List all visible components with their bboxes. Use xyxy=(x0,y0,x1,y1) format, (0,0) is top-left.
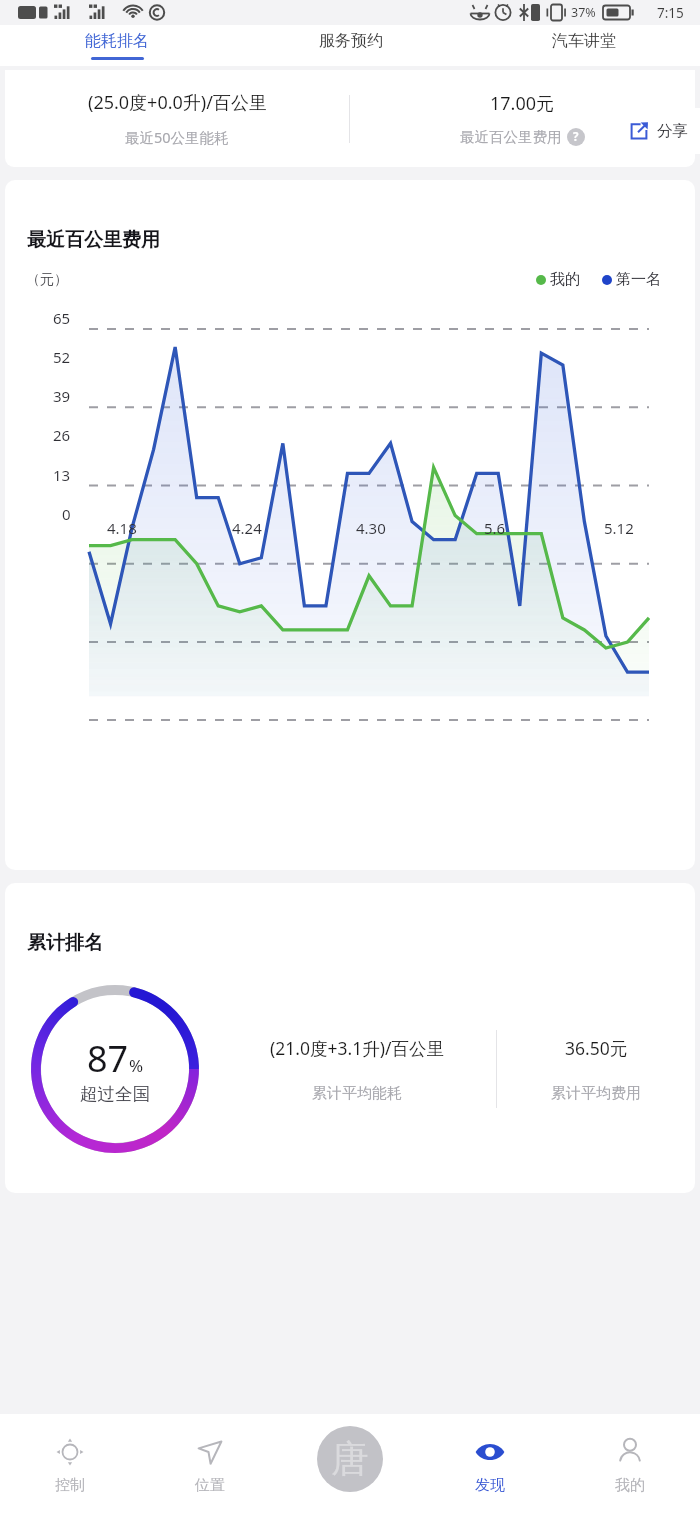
staticText: 位置 xyxy=(195,1476,225,1495)
staticText: 52 xyxy=(53,347,71,367)
button[interactable]: 汽车讲堂 xyxy=(467,25,700,66)
button[interactable]: 位置 xyxy=(140,1414,280,1516)
staticText: 65 xyxy=(53,308,71,328)
staticText: 累计平均能耗 xyxy=(312,1084,402,1103)
staticText: 13 xyxy=(53,465,71,485)
staticText: 87 xyxy=(87,1034,129,1083)
button[interactable]: 我的 xyxy=(560,1414,700,1516)
staticText: 累计平均费用 xyxy=(551,1084,641,1103)
staticText: 唐 xyxy=(331,1435,369,1483)
staticText: 最近百公里费用 xyxy=(460,128,562,146)
staticText: （元） xyxy=(26,271,68,289)
staticText: % xyxy=(129,1054,144,1077)
staticText: 4.24 xyxy=(232,518,262,538)
staticText: 汽车讲堂 xyxy=(552,31,616,51)
staticText: 5.12 xyxy=(604,518,634,538)
staticText: 5.6 xyxy=(484,518,506,538)
staticText: 39 xyxy=(53,386,71,406)
staticText: (25.0度+0.0升)/百公里 xyxy=(88,90,267,115)
staticText: 能耗排名 xyxy=(85,31,149,51)
staticText: 最近百公里费用 xyxy=(27,228,160,252)
staticText: 分享 xyxy=(657,121,688,141)
staticText: 37% xyxy=(571,4,596,21)
button[interactable]: 帮助 xyxy=(567,128,585,146)
staticText: 0 xyxy=(62,504,71,524)
staticText: ? xyxy=(573,129,579,145)
staticText: 服务预约 xyxy=(319,31,383,51)
button[interactable]: 能耗排名 xyxy=(0,25,234,66)
staticText: 超过全国 xyxy=(80,1083,150,1105)
staticText: 累计排名 xyxy=(27,931,103,955)
staticText: 最近50公里能耗 xyxy=(125,127,229,147)
button[interactable]: 唐 xyxy=(280,1414,420,1516)
staticText: 控制 xyxy=(55,1476,85,1495)
staticText: 第一名 xyxy=(616,270,661,289)
staticText: 36.50元 xyxy=(565,1036,628,1060)
staticText: 发现 xyxy=(475,1476,505,1495)
button[interactable]: 分享 xyxy=(614,108,700,154)
button[interactable]: 发现 xyxy=(420,1414,560,1516)
staticText: (21.0度+3.1升)/百公里 xyxy=(270,1036,444,1060)
staticText: 我的 xyxy=(550,270,580,289)
staticText: 4.18 xyxy=(107,518,137,538)
staticText: 我的 xyxy=(615,1476,645,1495)
staticText: 26 xyxy=(53,425,71,445)
staticText: 7:15 xyxy=(657,4,684,22)
button[interactable]: (25.0度+0.0升)/百公里 xyxy=(5,70,695,167)
staticText: 4.30 xyxy=(356,518,386,538)
staticText: 17.00元 xyxy=(490,91,555,116)
button[interactable]: 服务预约 xyxy=(234,25,467,66)
button[interactable]: 控制 xyxy=(0,1414,140,1516)
